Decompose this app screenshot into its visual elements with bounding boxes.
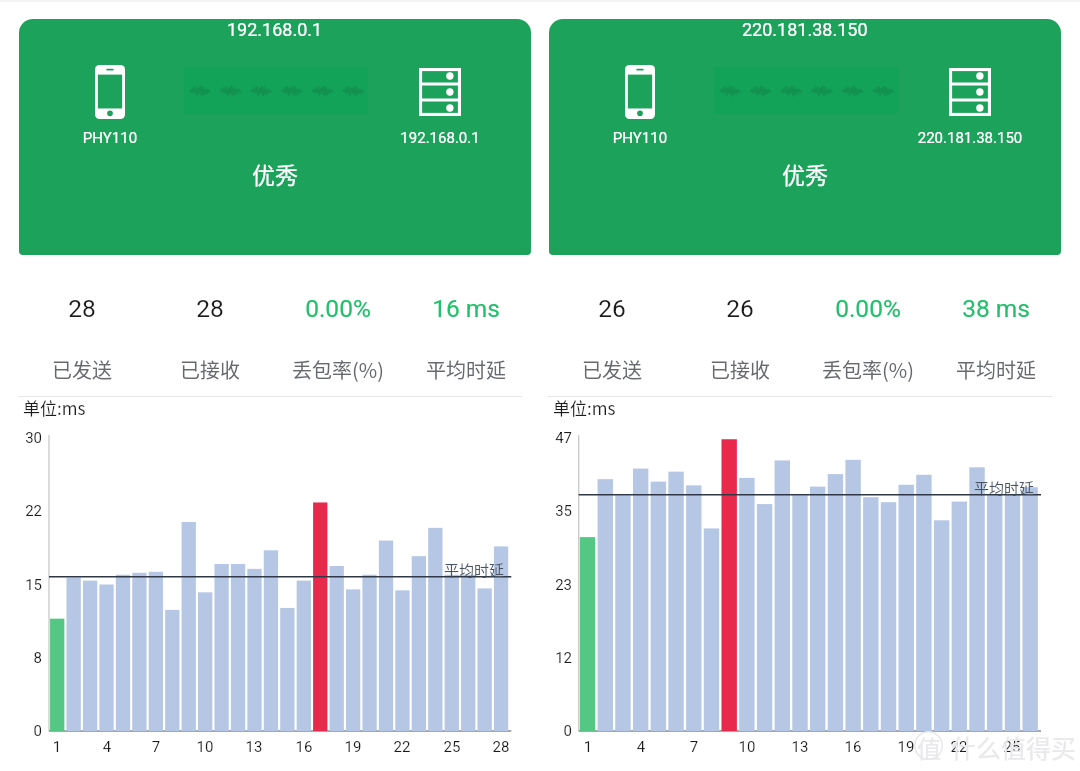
staticText: 25 (432, 738, 472, 756)
staticText: 什么值得买 (951, 729, 1077, 765)
staticText: 4 (621, 738, 661, 756)
staticText: 值 (915, 730, 943, 765)
button[interactable]: 192.168.0.1 (19, 19, 531, 255)
staticText: 0 (0, 722, 42, 740)
staticText: 26 (548, 294, 676, 323)
staticText: 丢包率(%) (274, 355, 402, 384)
staticText: 220.181.38.150 (742, 19, 868, 40)
staticText: 47 (530, 429, 572, 447)
staticText: 12 (530, 649, 572, 667)
staticText: 16 (833, 738, 873, 756)
other: Remote server (419, 68, 461, 116)
staticText: 192.168.0.1 (227, 19, 323, 40)
staticText: 单位:ms (553, 395, 616, 420)
other: Local device (95, 65, 125, 119)
staticText: 8 (0, 649, 42, 667)
staticText: 已发送 (548, 355, 676, 384)
staticText: 优秀 (252, 157, 298, 190)
staticText: 0.00% (274, 294, 402, 323)
staticText: 单位:ms (23, 395, 86, 420)
button[interactable]: 26 (676, 288, 804, 388)
staticText: 1 (37, 738, 77, 756)
staticText: 优秀 (782, 157, 828, 190)
staticText: 22 (382, 738, 422, 756)
staticText: 220.181.38.150 (885, 129, 1055, 147)
staticText: 22 (0, 502, 42, 520)
staticText: 已接收 (146, 355, 274, 384)
staticText: 0 (530, 722, 572, 740)
staticText: 平均时延 (444, 559, 505, 581)
staticText: PHY110 (45, 129, 175, 147)
staticText: 16 (284, 738, 324, 756)
staticText: 192.168.0.1 (375, 129, 505, 147)
button[interactable]: 0.00% (804, 288, 932, 388)
staticText: 10 (727, 738, 767, 756)
staticText: 25 (992, 738, 1032, 756)
staticText: 平均时延 (932, 355, 1060, 384)
staticText: 4 (87, 738, 127, 756)
other: Remote server (949, 68, 991, 116)
staticText: 19 (333, 738, 373, 756)
staticText: 22 (939, 738, 979, 756)
staticText: 1 (568, 738, 608, 756)
staticText: 16 ms (402, 294, 530, 323)
button[interactable]: 26 (548, 288, 676, 388)
staticText: 已接收 (676, 355, 804, 384)
staticText: 19 (886, 738, 926, 756)
staticText: 平均时延 (974, 477, 1035, 499)
staticText: 38 ms (932, 294, 1060, 323)
button[interactable]: 38 ms (932, 288, 1060, 388)
staticText: 7 (136, 738, 176, 756)
staticText: 26 (676, 294, 804, 323)
staticText: 30 (0, 429, 42, 447)
staticText: 28 (146, 294, 274, 323)
button[interactable]: 0.00% (274, 288, 402, 388)
staticText: 28 (18, 294, 146, 323)
staticText: 平均时延 (402, 355, 530, 384)
staticText: 15 (0, 576, 42, 594)
staticText: 10 (185, 738, 225, 756)
button[interactable]: 16 ms (402, 288, 530, 388)
staticText: 28 (481, 738, 521, 756)
staticText: 35 (530, 502, 572, 520)
staticText: 0.00% (804, 294, 932, 323)
staticText: 23 (530, 576, 572, 594)
staticText: PHY110 (575, 129, 705, 147)
staticText: 丢包率(%) (804, 355, 932, 384)
button[interactable]: 28 (18, 288, 146, 388)
staticText: 13 (780, 738, 820, 756)
other: Local device (625, 65, 655, 119)
button[interactable]: 220.181.38.150 (549, 19, 1061, 255)
staticText: 已发送 (18, 355, 146, 384)
staticText: 7 (674, 738, 714, 756)
button[interactable]: 28 (146, 288, 274, 388)
staticText: 13 (234, 738, 274, 756)
